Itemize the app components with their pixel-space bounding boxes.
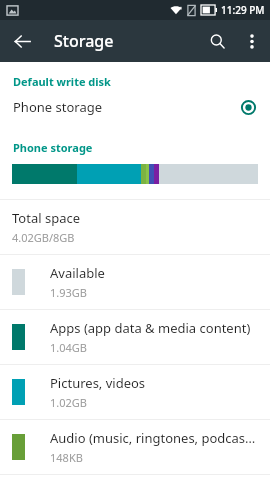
staticText: Pictures, videos: [50, 374, 146, 392]
staticText: Phone storage: [13, 98, 103, 116]
staticText: 1.04GB: [50, 340, 87, 355]
staticText: Default write disk: [13, 74, 111, 89]
staticText: 148KB: [50, 450, 83, 465]
button[interactable]: Pictures, videos: [0, 365, 270, 419]
button[interactable]: Apps (app data & media content): [0, 310, 270, 364]
button[interactable]: Search: [198, 22, 236, 60]
button[interactable]: More options: [236, 25, 268, 57]
button[interactable]: Audio (music, ringtones, podcasts, et..: [0, 420, 270, 474]
button[interactable]: Phone storage: [0, 89, 270, 125]
staticText: Apps (app data & media content): [50, 319, 251, 337]
button[interactable]: Back: [4, 23, 40, 59]
staticText: 1.02GB: [50, 395, 87, 410]
button[interactable]: Available: [0, 255, 270, 309]
staticText: Total space: [12, 209, 80, 227]
staticText: Available: [50, 264, 105, 282]
staticText: 1.93GB: [50, 285, 87, 300]
staticText: Audio (music, ringtones, podcasts, et..: [50, 429, 260, 447]
staticText: 11:29 PM: [221, 3, 265, 17]
staticText: Phone storage: [13, 140, 93, 155]
staticText: 4.02GB/8GB: [12, 230, 75, 245]
button[interactable]: Total space: [0, 200, 270, 254]
staticText: Storage: [54, 30, 114, 52]
